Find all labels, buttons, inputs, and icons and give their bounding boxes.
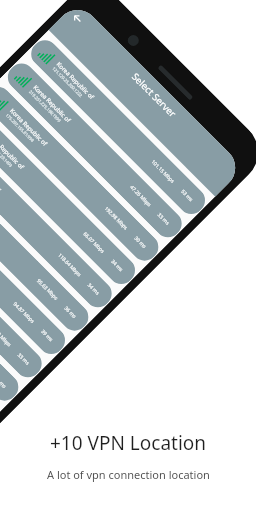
staticText: Korea Republic of <box>31 84 72 125</box>
button[interactable]: Korea Republic of <box>0 198 47 383</box>
staticText: 53 ms <box>179 188 195 204</box>
staticText: 33 ms <box>16 352 31 367</box>
staticText: 30 ms <box>133 235 148 250</box>
staticText: 41 ms <box>0 375 8 390</box>
staticText: 124.216.125.23:1493 <box>0 136 14 169</box>
staticText: 34 ms <box>86 282 101 297</box>
staticText: A lot of vpn connection location <box>47 467 210 482</box>
staticText: Korea Republic of <box>8 107 49 148</box>
staticText: 36 ms <box>63 305 78 320</box>
staticText: 39 ms <box>39 328 55 344</box>
button[interactable]: Korea Republic of <box>26 35 210 219</box>
staticText: +10 VPN Location <box>50 430 207 456</box>
staticText: 101.15 Mbps <box>150 159 176 185</box>
button[interactable]: Back <box>68 9 87 28</box>
button[interactable]: Korea Republic of <box>0 151 94 336</box>
staticText: 219.251.225.196:1999 <box>27 89 62 124</box>
staticText: 34 ms <box>109 258 125 274</box>
staticText: 94.87 Mbps <box>12 301 36 325</box>
button[interactable]: Korea Republic of <box>0 105 140 289</box>
button[interactable]: Korea Republic of <box>0 128 117 313</box>
staticText: Select Server <box>129 70 179 120</box>
button[interactable]: Korea Republic of <box>0 175 70 359</box>
staticText: Korea Republic of <box>0 130 26 171</box>
button[interactable]: Korea Republic of <box>0 81 164 266</box>
staticText: 77.12 Mbps <box>0 324 13 349</box>
staticText: 47.26 Mbps <box>128 184 153 209</box>
staticText: 66.07 Mbps <box>82 231 106 255</box>
button[interactable]: Korea Republic of <box>2 58 187 243</box>
staticText: 121.129.25.200:1222 <box>51 66 84 99</box>
button[interactable]: Korea Republic of <box>0 221 24 406</box>
staticText: 192.98 Mbps <box>103 205 130 232</box>
staticText: 175.207.155.81:998 <box>4 113 36 144</box>
staticText: Korea Republic of <box>55 60 96 101</box>
staticText: Korea Republic of <box>0 154 2 195</box>
staticText: 118.64 Mbps <box>56 252 83 279</box>
staticText: 33 ms <box>156 212 171 227</box>
staticText: 95.63 Mbps <box>35 277 60 302</box>
